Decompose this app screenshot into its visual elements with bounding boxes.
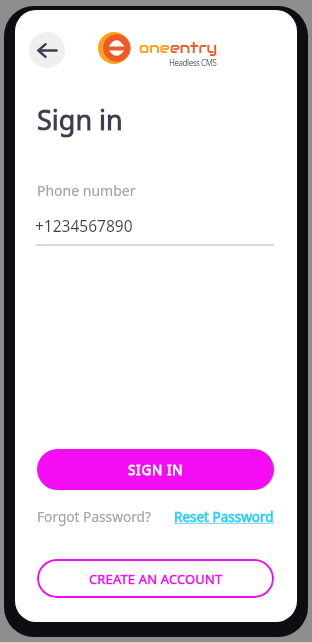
staticText: CREATE AN ACCOUNT	[89, 570, 223, 588]
staticText: SIGN IN	[128, 461, 184, 479]
staticText: Phone number	[37, 181, 136, 200]
button[interactable]: Back	[29, 32, 65, 68]
button[interactable]: CREATE AN ACCOUNT	[37, 559, 274, 598]
button[interactable]: Forgot Password?	[37, 507, 151, 526]
button[interactable]: Reset Password	[174, 508, 274, 526]
staticText: Sign in	[37, 101, 123, 138]
staticText: one	[139, 38, 170, 57]
staticText: Headless CMS	[169, 57, 217, 68]
staticText: entry	[170, 38, 218, 57]
button[interactable]: SIGN IN	[37, 449, 274, 490]
staticText: +1234567890	[35, 215, 133, 236]
